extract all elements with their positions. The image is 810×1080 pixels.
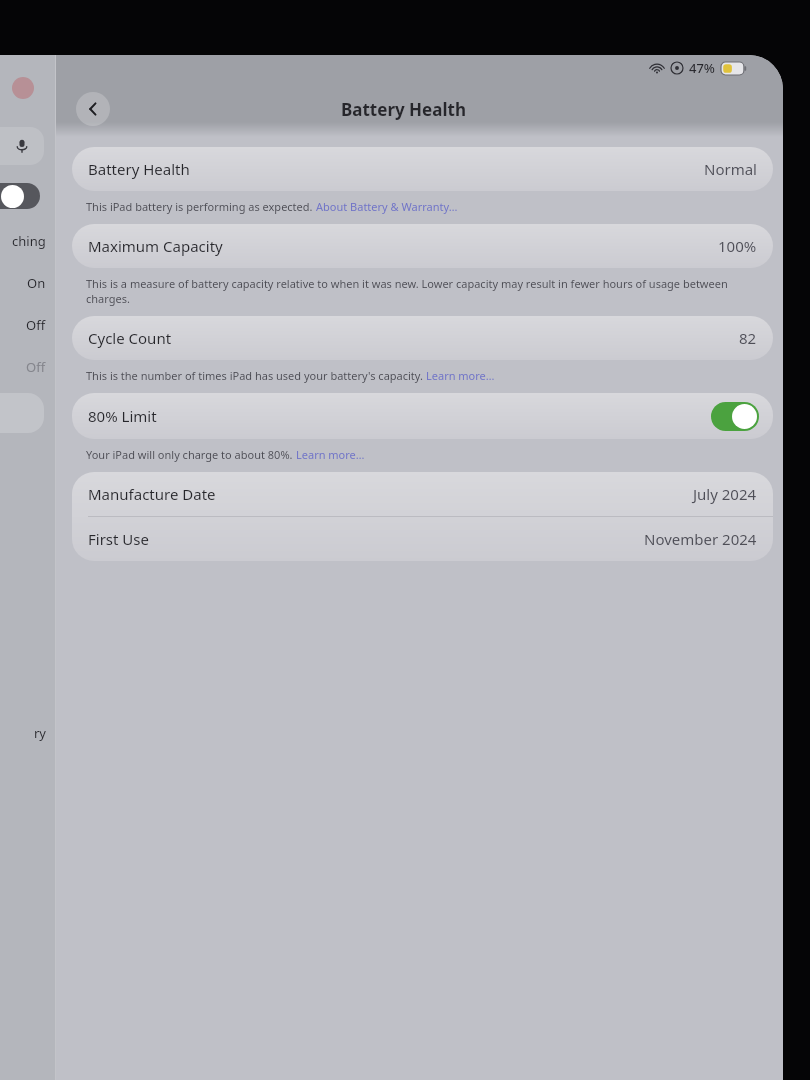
button[interactable] bbox=[0, 393, 44, 433]
staticText: 47% bbox=[689, 59, 715, 77]
staticText: Learn more… bbox=[426, 368, 495, 383]
button[interactable]: Dictate search bbox=[0, 127, 44, 165]
button[interactable] bbox=[0, 183, 40, 209]
staticText: Learn more… bbox=[296, 447, 365, 462]
staticText: Battery Health bbox=[341, 98, 466, 121]
button[interactable]: Cycle Count bbox=[72, 316, 773, 360]
staticText: ry bbox=[34, 724, 46, 742]
button[interactable]: Manufacture Date bbox=[72, 472, 773, 516]
button[interactable]: Battery Health bbox=[72, 147, 773, 191]
staticText: Battery Health bbox=[88, 159, 190, 179]
staticText: Your iPad will only charge to about 80%. bbox=[86, 447, 296, 462]
staticText: About Battery & Warranty… bbox=[316, 199, 458, 214]
staticText: November 2024 bbox=[644, 529, 757, 549]
staticText: Normal bbox=[704, 159, 757, 179]
staticText: Off bbox=[26, 358, 46, 376]
staticText: Manufacture Date bbox=[88, 484, 216, 504]
staticText: Cycle Count bbox=[88, 328, 172, 348]
staticText: Off bbox=[26, 316, 46, 334]
staticText: This iPad battery is performing as expec… bbox=[86, 199, 316, 214]
button[interactable]: About Battery & Warranty… bbox=[316, 199, 458, 214]
staticText: ching bbox=[12, 232, 46, 250]
staticText: Maximum Capacity bbox=[88, 236, 223, 256]
button[interactable]: Learn more… bbox=[296, 447, 365, 462]
staticText: 80% Limit bbox=[88, 406, 157, 426]
staticText: 100% bbox=[718, 236, 757, 256]
staticText: 82 bbox=[739, 328, 757, 348]
staticText: July 2024 bbox=[693, 484, 757, 504]
button[interactable]: 80% Limit bbox=[72, 393, 773, 439]
button[interactable]: First Use bbox=[72, 517, 773, 561]
button[interactable]: Back bbox=[76, 92, 110, 126]
button[interactable]: Learn more… bbox=[426, 368, 495, 383]
staticText: This is the number of times iPad has use… bbox=[86, 368, 426, 383]
staticText: This is a measure of battery capacity re… bbox=[86, 276, 753, 306]
staticText: First Use bbox=[88, 529, 149, 549]
button[interactable]: Maximum Capacity bbox=[72, 224, 773, 268]
staticText: On bbox=[27, 274, 46, 292]
